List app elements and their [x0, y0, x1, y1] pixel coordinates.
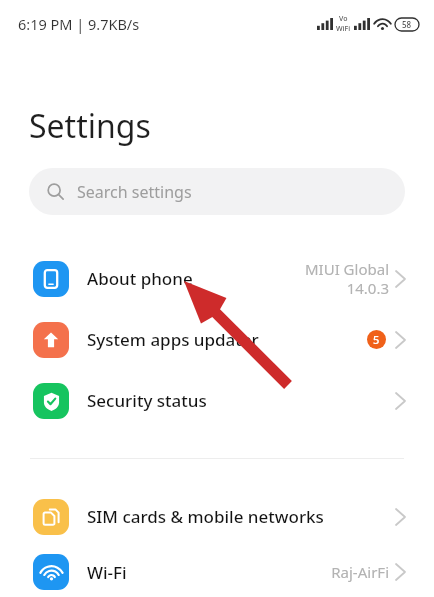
staticText: Search settings: [77, 181, 192, 203]
staticText: Security status: [87, 389, 207, 412]
staticText: MIUI Global 14.0.3: [304, 259, 389, 298]
button[interactable]: Security status: [0, 370, 434, 431]
staticText: Settings: [29, 104, 151, 148]
staticText: 58: [402, 19, 412, 30]
button[interactable]: System apps updater: [0, 309, 434, 370]
staticText: Wi-Fi: [87, 561, 127, 584]
staticText: WiFi: [336, 24, 351, 34]
other: System apps updater: [33, 322, 69, 358]
other: Wi-Fi: [33, 554, 69, 590]
staticText: About phone: [87, 267, 193, 290]
staticText: Vo: [339, 14, 348, 24]
staticText: SIM cards & mobile networks: [87, 505, 324, 528]
button[interactable]: Wi-Fi: [0, 547, 434, 597]
button[interactable]: SIM cards and mobile networks: [0, 486, 434, 547]
staticText: 6:19 PM | 9.7KB/s: [18, 14, 140, 34]
staticText: 5: [373, 332, 380, 347]
button[interactable]: Search settings: [29, 168, 405, 215]
staticText: System apps updater: [87, 328, 259, 351]
button[interactable]: About phone: [0, 248, 434, 309]
other: SIM cards and mobile networks: [33, 499, 69, 535]
other: About phone: [33, 261, 69, 297]
other: Security status: [33, 383, 69, 419]
staticText: Raj-AirFi: [331, 562, 389, 582]
